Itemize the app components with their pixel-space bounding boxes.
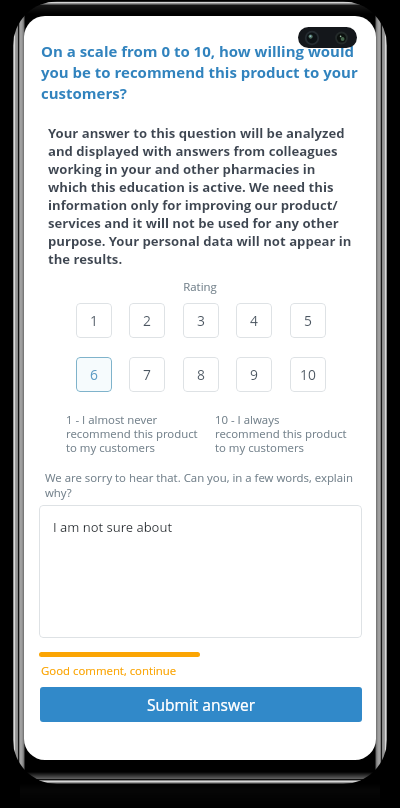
staticText: 1 - I almost never recommend this produc… [66,412,198,456]
staticText: We are sorry to hear that. Can you, in a… [45,470,357,500]
staticText: 6 [90,365,98,384]
staticText: On a scale from 0 to 10, how willing wou… [41,41,363,104]
button[interactable]: 1 [76,303,112,338]
staticText: 10 - I always recommend this product to … [215,412,347,456]
staticText: Rating [24,279,376,295]
staticText: 3 [197,311,205,330]
button[interactable]: 3 [183,303,219,338]
staticText: 9 [250,365,258,384]
staticText: 8 [197,365,205,384]
staticText: 1 [90,311,98,330]
staticText: Your answer to this question will be ana… [48,124,355,268]
button[interactable]: 7 [129,357,165,392]
staticText: 5 [304,311,312,330]
staticText: 2 [143,311,151,330]
staticText: 4 [250,311,258,330]
staticText: Submit answer [147,694,255,715]
button[interactable]: 6 [76,357,112,392]
button[interactable]: 9 [236,357,272,392]
staticText: 7 [143,365,151,384]
button[interactable]: 10 [290,357,326,392]
button[interactable]: I am not sure about [39,505,362,638]
button[interactable]: 8 [183,357,219,392]
button[interactable]: Submit answer [40,687,362,722]
staticText: Good comment, continue [41,663,177,679]
button[interactable]: 4 [236,303,272,338]
button[interactable]: 2 [129,303,165,338]
staticText: 10 [300,365,316,384]
staticText: I am not sure about [53,518,173,536]
button[interactable]: 5 [290,303,326,338]
